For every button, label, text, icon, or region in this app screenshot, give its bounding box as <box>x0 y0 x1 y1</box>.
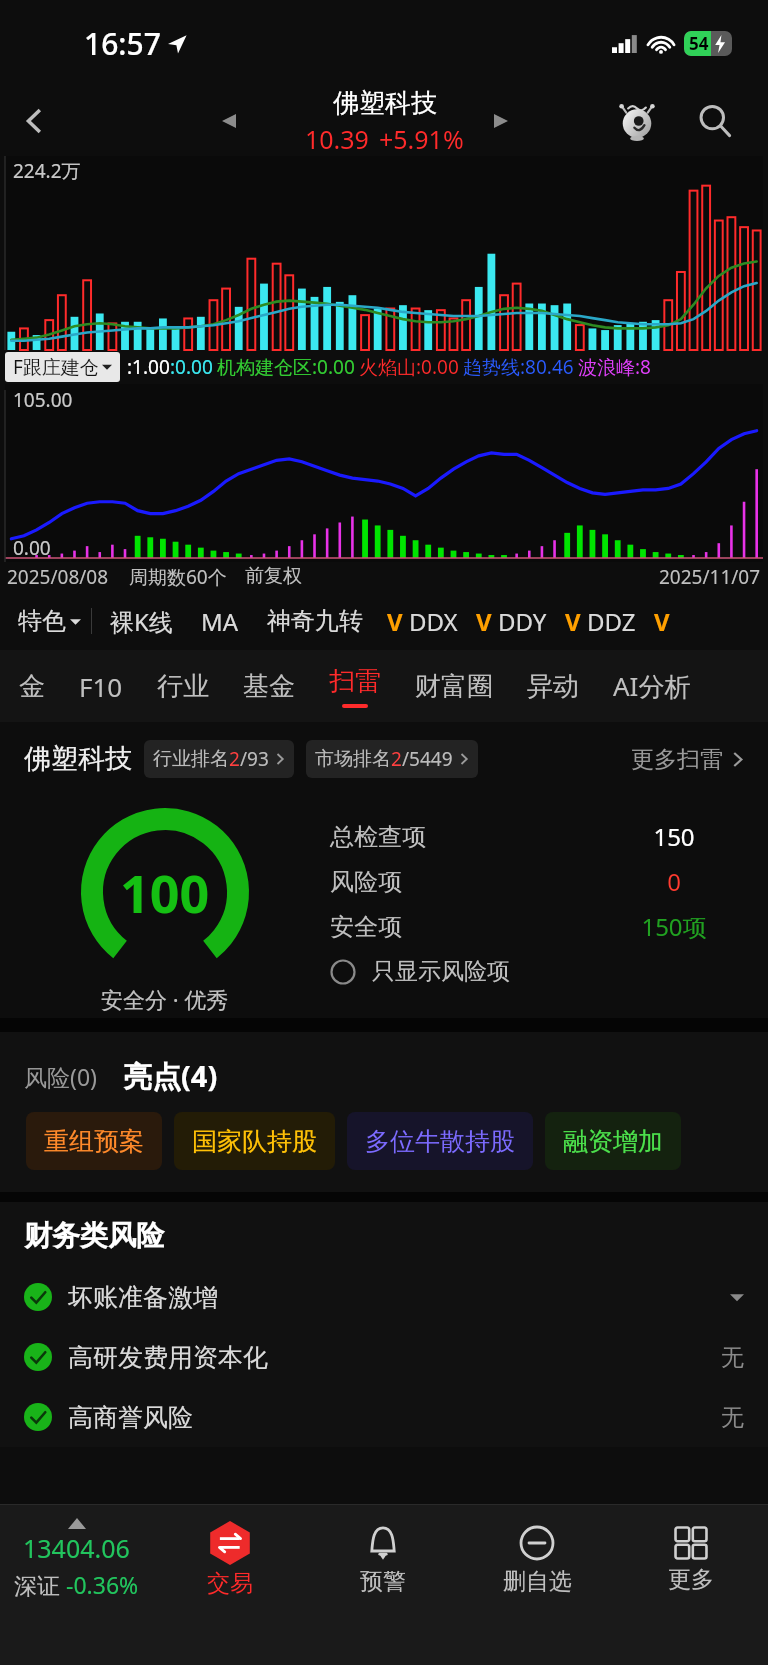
staticText: 前复权 <box>245 564 302 588</box>
staticText: 105.00 <box>13 387 73 413</box>
button[interactable]: 预警 <box>306 1505 460 1613</box>
staticText: 国家队持股 <box>192 1126 317 1157</box>
button[interactable]: 13404.06 <box>0 1518 153 1600</box>
staticText: 无 <box>721 1343 744 1372</box>
button[interactable]: 只显示风险项 <box>330 957 510 986</box>
button[interactable]: Search <box>686 92 744 150</box>
staticText: 0.00 <box>13 535 51 561</box>
button[interactable]: F10 <box>62 650 140 722</box>
staticText: 高商誉风险 <box>68 1402 193 1433</box>
staticText: 只显示风险项 <box>372 957 510 986</box>
staticText: 100 <box>120 857 210 928</box>
staticText: :0.00 <box>170 354 213 380</box>
staticText: 基金 <box>243 670 295 703</box>
button[interactable]: 交易 <box>153 1505 306 1613</box>
staticText: 2025/11/07 <box>659 564 761 590</box>
button[interactable]: Assistant <box>608 92 666 150</box>
staticText: AI分析 <box>613 668 691 704</box>
button[interactable]: 神奇九转 <box>267 606 363 636</box>
staticText: 金 <box>19 670 45 703</box>
staticText: 更多 <box>668 1565 714 1594</box>
staticText: 火焰山:0.00 <box>359 354 459 380</box>
staticText: 波浪峰:8 <box>578 354 651 380</box>
staticText: 行业 <box>157 670 209 703</box>
staticText: 融资增加 <box>563 1126 663 1157</box>
button[interactable]: 坏账准备激增 <box>0 1267 768 1327</box>
staticText: /93 <box>240 746 269 772</box>
staticText: -0.36% <box>66 1569 139 1600</box>
staticText: /5449 <box>402 746 453 772</box>
staticText: 风险项 <box>330 867 402 897</box>
button[interactable]: V <box>565 605 636 638</box>
button[interactable]: 高商誉风险 <box>0 1387 768 1447</box>
button[interactable]: V <box>476 605 547 638</box>
staticText: 佛塑科技 <box>333 87 437 120</box>
button[interactable]: 更多 <box>614 1505 768 1613</box>
staticText: 多位牛散持股 <box>365 1126 515 1157</box>
staticText: F跟庄建仓 <box>13 354 99 380</box>
button[interactable]: F跟庄建仓 <box>5 352 120 382</box>
staticText: 10.39 <box>305 122 369 156</box>
button[interactable]: AI分析 <box>596 650 708 722</box>
staticText: 交易 <box>207 1569 253 1598</box>
staticText: 224.2万 <box>13 158 81 184</box>
staticText: 删自选 <box>503 1567 572 1596</box>
staticText: 周期数60个 <box>129 564 227 590</box>
button[interactable]: 高研发费用资本化 <box>0 1327 768 1387</box>
staticText: 机构建仓区:0.00 <box>217 354 355 380</box>
button[interactable]: 金 <box>2 650 62 722</box>
staticText: 行业排名 <box>153 747 229 771</box>
button[interactable]: 行业 <box>140 650 226 722</box>
button[interactable]: 更多扫雷 <box>631 745 744 774</box>
button[interactable]: 重组预案 <box>26 1112 162 1170</box>
button[interactable]: 市场排名 <box>306 740 478 778</box>
button[interactable]: 多位牛散持股 <box>347 1112 533 1170</box>
button[interactable]: 风险(0) <box>24 1061 97 1098</box>
staticText: 13404.06 <box>23 1531 130 1565</box>
staticText: V <box>476 605 492 638</box>
staticText: :1.00 <box>127 354 170 380</box>
staticText: 2 <box>229 746 240 772</box>
staticText: F10 <box>79 669 123 704</box>
staticText: 总检查项 <box>330 822 426 852</box>
staticText: 150项 <box>614 910 734 943</box>
staticText: 150 <box>614 820 734 853</box>
staticText: 0 <box>614 865 734 898</box>
button[interactable]: 特色 <box>0 606 91 636</box>
button[interactable]: 裸K线 <box>110 605 173 638</box>
button[interactable]: 佛塑科技 <box>305 87 464 156</box>
button[interactable]: V <box>654 605 670 638</box>
staticText: 安全项 <box>330 912 402 942</box>
button[interactable]: 行业排名 <box>144 740 294 778</box>
staticText: 财富圈 <box>415 670 493 703</box>
staticText: DDY <box>498 605 547 638</box>
button[interactable]: MA <box>201 605 239 638</box>
button[interactable]: 扫雷 <box>312 650 398 722</box>
button[interactable]: 融资增加 <box>545 1112 681 1170</box>
staticText: 54 <box>689 32 709 55</box>
staticText: 财务类风险 <box>24 1218 164 1253</box>
staticText: 佛塑科技 <box>24 742 132 776</box>
button[interactable]: 国家队持股 <box>174 1112 335 1170</box>
button[interactable]: 基金 <box>226 650 312 722</box>
staticText: 预警 <box>360 1567 406 1596</box>
staticText: V <box>387 605 403 638</box>
button[interactable]: V <box>387 605 458 638</box>
staticText: 2025/08/08 <box>7 564 109 590</box>
staticText: 无 <box>721 1403 744 1432</box>
staticText: 趋势线:80.46 <box>463 354 574 380</box>
staticText: 深证 <box>14 1569 66 1600</box>
button[interactable]: 财富圈 <box>398 650 510 722</box>
staticText: +5.91% <box>379 122 464 156</box>
staticText: 重组预案 <box>44 1126 144 1157</box>
staticText: 坏账准备激增 <box>68 1282 218 1313</box>
staticText: 高研发费用资本化 <box>68 1342 268 1373</box>
button[interactable]: 异动 <box>510 650 596 722</box>
button[interactable]: Back <box>0 86 70 156</box>
staticText: 特色 <box>18 606 66 636</box>
staticText: 2 <box>391 746 402 772</box>
staticText: 扫雷 <box>329 665 381 698</box>
button[interactable]: 删自选 <box>460 1505 614 1613</box>
staticText: 16:57 <box>84 23 161 64</box>
button[interactable]: 亮点(4) <box>123 1056 218 1098</box>
